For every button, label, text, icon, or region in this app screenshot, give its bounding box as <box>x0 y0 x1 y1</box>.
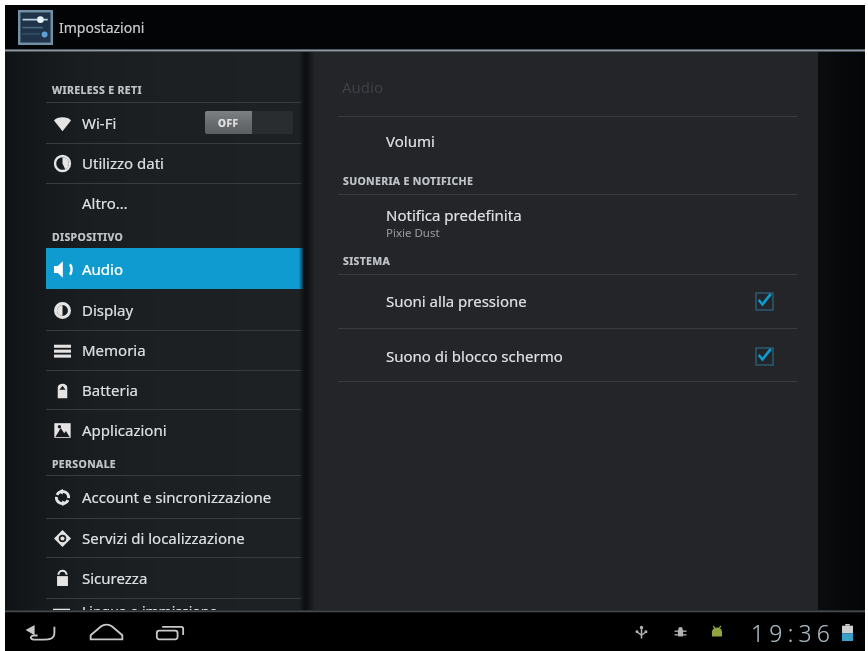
staticText: PERSONALE <box>52 457 117 471</box>
button[interactable]: Batteria <box>46 370 303 409</box>
button[interactable]: Sicurezza <box>46 557 303 598</box>
button[interactable]: Suoni alla pressione <box>5 282 865 320</box>
staticText: Utilizzo dati <box>82 153 164 173</box>
button[interactable]: Suono di blocco schermo <box>5 337 865 375</box>
button[interactable]: OFF <box>205 111 293 134</box>
staticText: Impostazioni <box>59 18 145 37</box>
button[interactable]: Account e sincronizzazione <box>46 475 303 518</box>
button[interactable]: Notifica predefinita <box>5 196 865 234</box>
staticText: Notifica predefinita <box>386 205 522 225</box>
staticText: Batteria <box>82 380 138 400</box>
staticText: OFF <box>218 116 239 130</box>
staticText: Sicurezza <box>82 568 148 588</box>
staticText: SISTEMA <box>343 254 391 268</box>
staticText: Pixie Dust <box>386 225 440 241</box>
button[interactable]: Back <box>20 613 60 651</box>
button[interactable]: Display <box>46 289 303 330</box>
button[interactable]: Audio <box>46 248 303 289</box>
button[interactable]: Servizi di localizzazione <box>46 518 303 557</box>
button[interactable]: Toggle <box>756 293 773 310</box>
staticText: Servizi di localizzazione <box>82 528 245 548</box>
button[interactable]: Lingua e immissione <box>46 607 303 612</box>
button[interactable]: Recent apps <box>150 613 190 651</box>
staticText: WIRELESS E RETI <box>52 83 142 97</box>
staticText: Audio <box>82 259 124 279</box>
button[interactable]: Utilizzo dati <box>46 143 303 183</box>
staticText: Altro… <box>82 193 128 213</box>
button[interactable]: Applicazioni <box>46 409 303 450</box>
staticText: Memoria <box>82 340 146 360</box>
staticText: 19:36 <box>751 617 836 648</box>
staticText: SUONERIA E NOTIFICHE <box>343 174 474 188</box>
button[interactable]: Home <box>86 613 126 651</box>
button[interactable]: Altro… <box>46 183 303 223</box>
staticText: Lingua e immissione <box>82 602 218 612</box>
staticText: DISPOSITIVO <box>52 230 124 244</box>
staticText: Audio <box>342 77 384 97</box>
button[interactable]: Wi-Fi <box>46 102 303 143</box>
staticText: Volumi <box>386 131 435 151</box>
staticText: Suono di blocco schermo <box>386 346 563 366</box>
staticText: Wi-Fi <box>82 113 117 133</box>
staticText: Account e sincronizzazione <box>82 487 272 507</box>
staticText: Applicazioni <box>82 420 167 440</box>
button[interactable]: Toggle <box>756 348 773 365</box>
button[interactable]: Volumi <box>5 122 865 160</box>
staticText: Suoni alla pressione <box>386 291 527 311</box>
staticText: Display <box>82 300 134 320</box>
button[interactable]: Memoria <box>46 330 303 370</box>
